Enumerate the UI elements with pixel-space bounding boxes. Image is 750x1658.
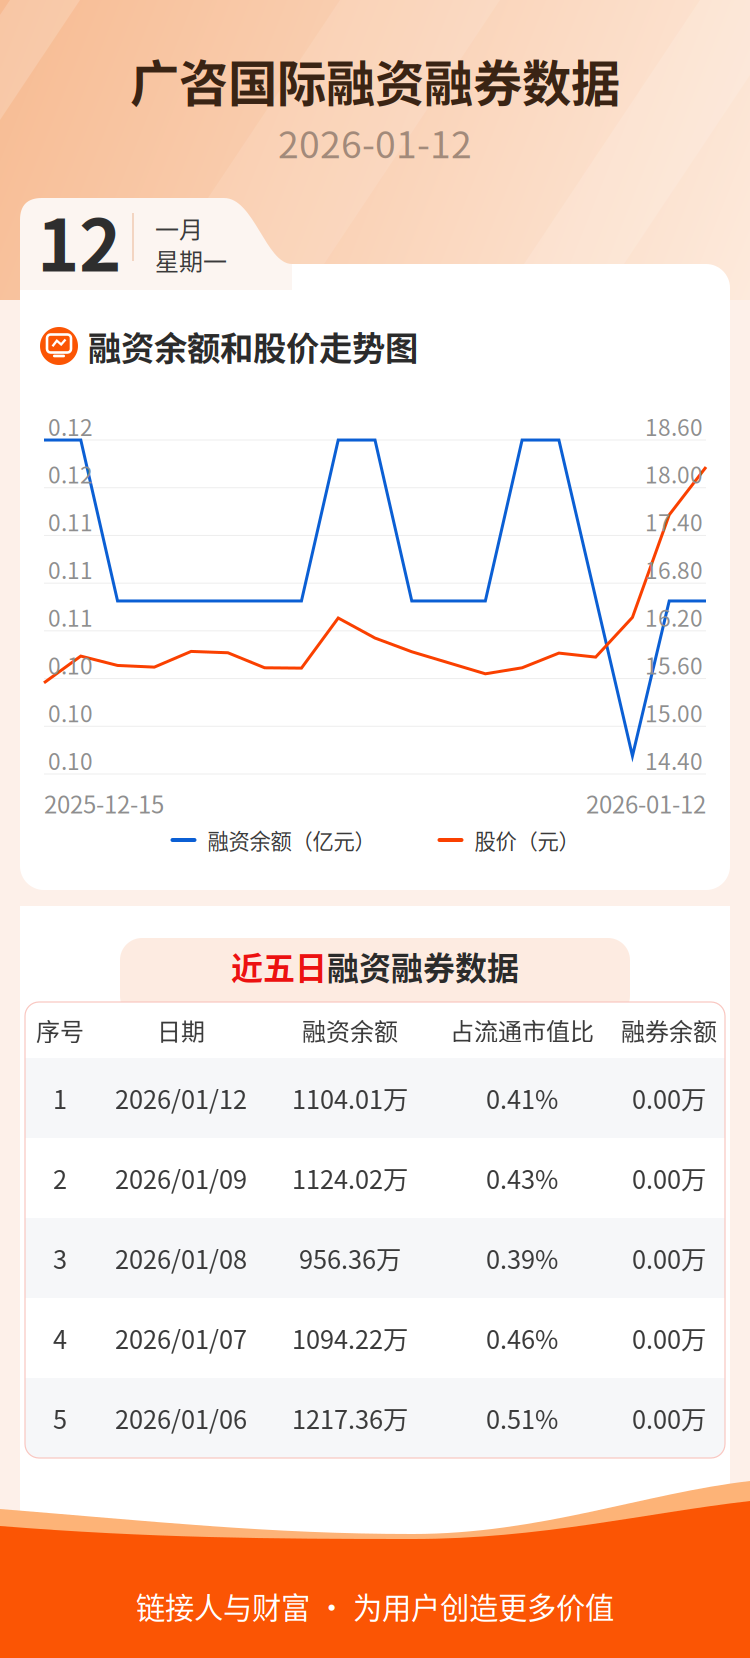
staticText: 融资融券数据: [327, 943, 519, 989]
staticText: 15.60: [645, 648, 703, 681]
staticText: 2026/01/07: [115, 1320, 247, 1356]
staticText: 近五日: [231, 943, 327, 989]
staticText: 14.40: [645, 744, 703, 776]
staticText: 1: [53, 1080, 67, 1116]
staticText: 融券余额: [621, 1013, 717, 1047]
staticText: 1104.01万: [292, 1080, 408, 1116]
staticText: 链接人与财富 · 为用户创造更多价值: [136, 1585, 614, 1627]
staticText: 17.40: [645, 505, 703, 538]
staticText: 1094.22万: [292, 1320, 408, 1356]
staticText: 日期: [157, 1013, 205, 1047]
staticText: 2026/01/09: [115, 1160, 247, 1196]
staticText: 0.12: [48, 410, 93, 442]
staticText: 股价（元）: [474, 825, 579, 855]
staticText: 15.00: [645, 696, 703, 729]
staticText: 2026/01/08: [115, 1240, 247, 1276]
staticText: 16.80: [645, 553, 703, 585]
staticText: 12: [37, 188, 121, 292]
staticText: 2026-01-12: [278, 115, 472, 169]
staticText: 0.12: [48, 457, 93, 490]
staticText: 18.60: [645, 410, 703, 442]
staticText: 星期一: [155, 243, 227, 277]
staticText: 一月: [155, 211, 203, 245]
staticText: 0.51%: [486, 1400, 558, 1436]
staticText: 2: [53, 1160, 67, 1196]
staticText: 16.20: [645, 600, 703, 633]
staticText: 5: [53, 1400, 67, 1436]
staticText: 0.10: [48, 648, 93, 681]
staticText: 1217.36万: [292, 1400, 408, 1436]
staticText: 4: [53, 1320, 67, 1356]
staticText: 融资余额: [302, 1013, 398, 1047]
staticText: 0.00万: [632, 1080, 706, 1116]
staticText: 18.00: [645, 457, 703, 490]
staticText: 0.00万: [632, 1240, 706, 1276]
staticText: 3: [53, 1240, 67, 1276]
staticText: 2025-12-15: [44, 786, 164, 820]
staticText: 0.11: [48, 505, 93, 538]
staticText: 0.11: [48, 553, 93, 585]
staticText: 广咨国际融资融券数据: [130, 44, 620, 116]
staticText: 0.10: [48, 696, 93, 729]
staticText: 0.00万: [632, 1320, 706, 1356]
staticText: 0.39%: [486, 1240, 558, 1276]
staticText: 0.10: [48, 744, 93, 776]
staticText: 序号: [36, 1013, 84, 1047]
staticText: 0.46%: [486, 1320, 558, 1356]
staticText: 2026/01/12: [115, 1080, 247, 1116]
staticText: 956.36万: [299, 1240, 401, 1276]
staticText: 0.00万: [632, 1400, 706, 1436]
staticText: 占流通市值比: [450, 1013, 594, 1047]
staticText: 1124.02万: [292, 1160, 408, 1196]
staticText: 0.41%: [486, 1080, 558, 1116]
staticText: 融资余额和股价走势图: [88, 322, 418, 370]
staticText: 0.00万: [632, 1160, 706, 1196]
staticText: 0.11: [48, 600, 93, 633]
staticText: 2026-01-12: [586, 786, 706, 820]
staticText: 2026/01/06: [115, 1400, 247, 1436]
staticText: 0.43%: [486, 1160, 558, 1196]
staticText: 融资余额（亿元）: [207, 825, 375, 855]
